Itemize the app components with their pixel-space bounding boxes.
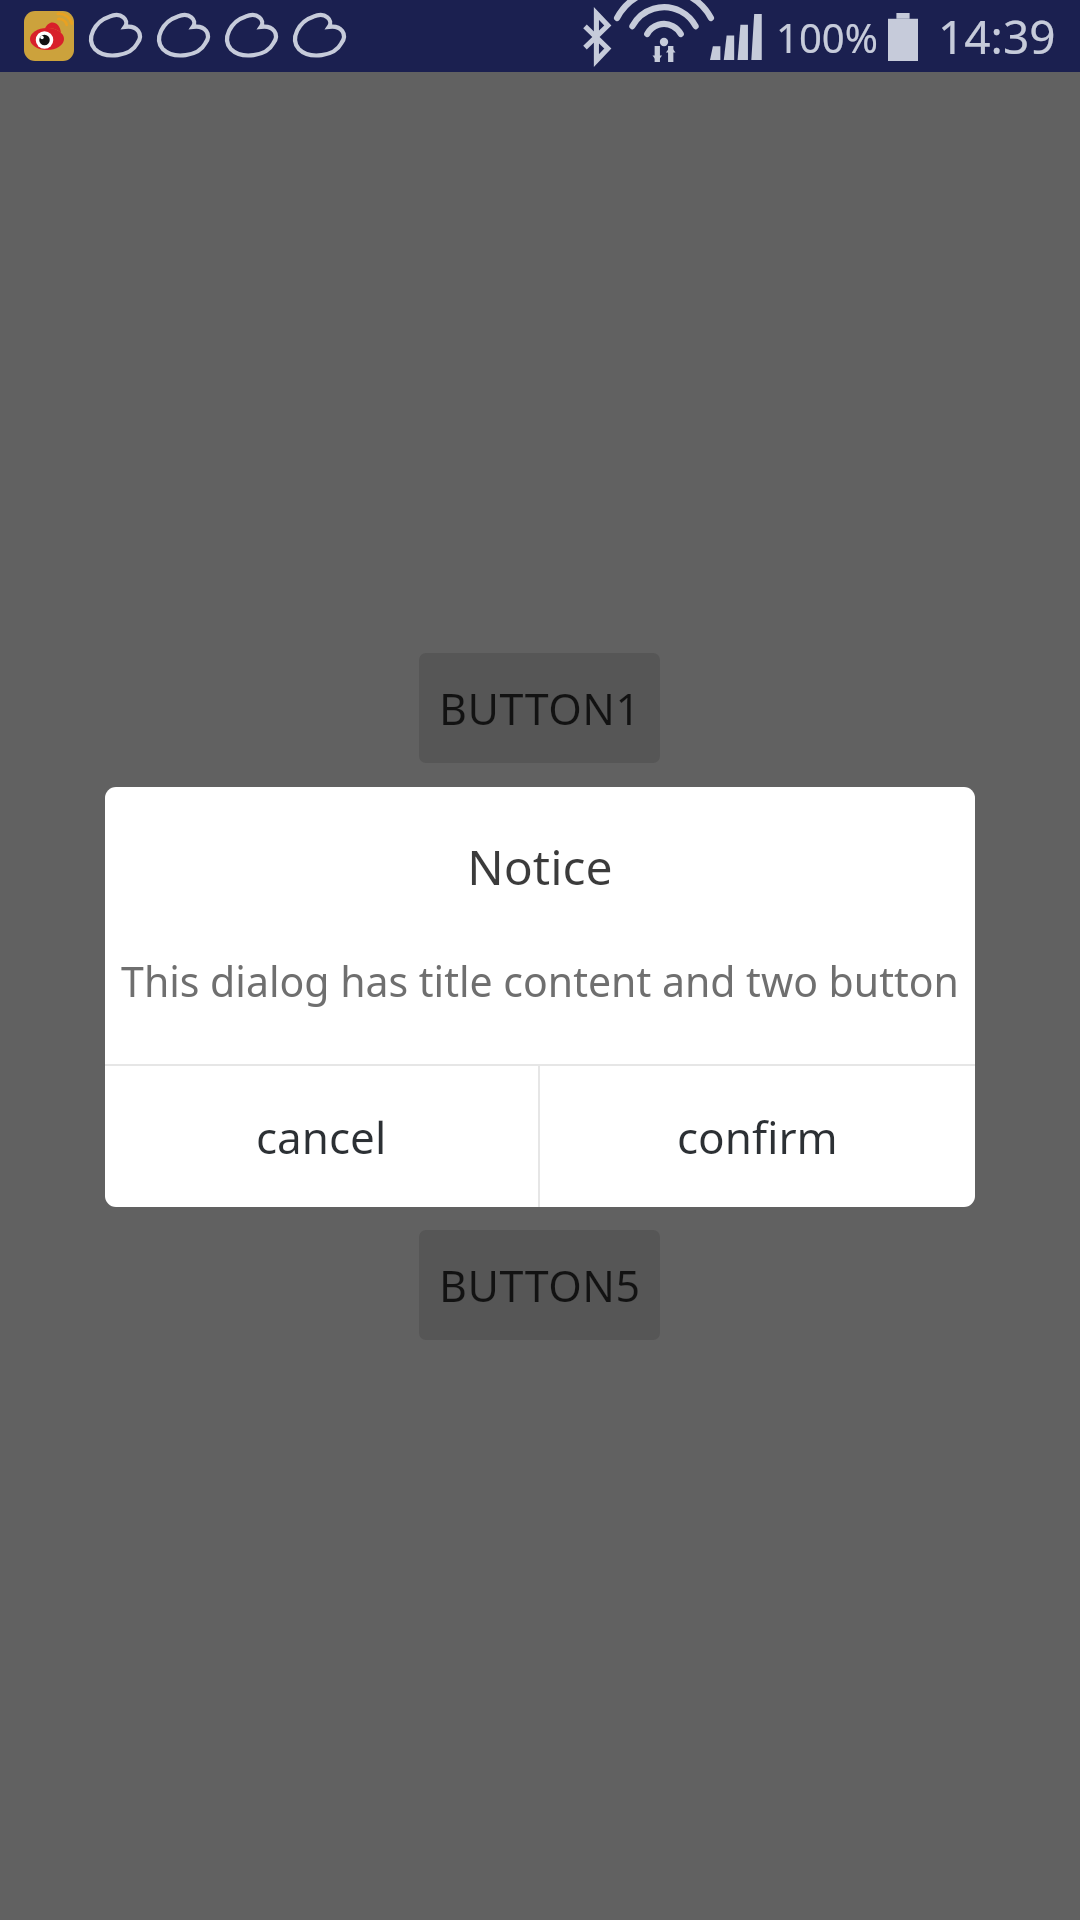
button[interactable]: BUTTON5	[419, 1230, 660, 1340]
button[interactable]: BUTTON1	[419, 653, 660, 763]
button[interactable]: cancel	[105, 1066, 538, 1207]
staticText: BUTTON1	[439, 679, 641, 738]
staticText: This dialog has title content and two bu…	[121, 953, 959, 1009]
staticText: cancel	[256, 1107, 387, 1167]
staticText: 100%	[776, 10, 878, 64]
staticText: confirm	[677, 1107, 838, 1167]
staticText: 14:39	[938, 5, 1056, 68]
button[interactable]: confirm	[540, 1066, 975, 1207]
staticText: Notice	[467, 834, 613, 899]
staticText: BUTTON5	[439, 1256, 641, 1315]
other: Weibo notification	[24, 11, 74, 61]
